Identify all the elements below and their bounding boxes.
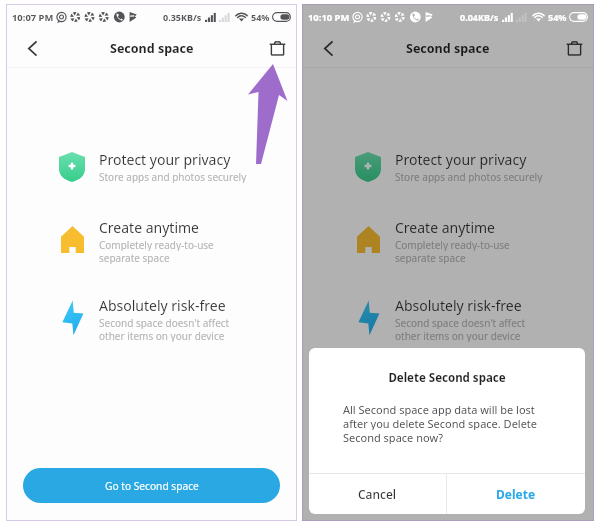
staticText: Delete Second space [309,370,585,386]
button[interactable]: Go to Second space [319,468,576,503]
staticText: 10:10 PM [308,11,350,24]
staticText: 10:07 PM [12,11,54,24]
button[interactable]: Delete [558,32,590,64]
staticText: 0.35KB/s [163,11,202,23]
staticText: All Second space app data will be lost [343,402,535,416]
staticText: Create anytime [395,218,495,237]
staticText: Second space doesn't affect [395,316,526,329]
staticText: separate space [395,251,466,264]
staticText: 54% [251,11,270,23]
staticText: Completely ready-to-use [395,238,510,251]
staticText: other items on your device [395,329,521,342]
staticText: Second space now? [343,430,444,444]
button[interactable]: Go to Second space [23,468,280,503]
staticText: 0.04KB/s [460,11,499,23]
staticText: Delete [496,486,536,502]
staticText: Store apps and photos securely [395,170,543,183]
staticText: Go to Second space [105,479,199,493]
button[interactable]: Back [312,32,344,64]
button[interactable]: Back [16,32,48,64]
staticText: separate space [99,251,170,264]
staticText: Completely ready-to-use [99,238,214,251]
staticText: Absolutely risk-free [99,296,226,315]
staticText: Second space [406,40,490,57]
staticText: after you delete Second space. Delete [343,416,538,430]
staticText: Protect your privacy [395,150,527,169]
staticText: Second space doesn't affect [99,316,230,329]
staticText: Cancel [358,486,397,502]
staticText: 54% [548,11,567,23]
staticText: Absolutely risk-free [395,296,522,315]
button[interactable]: Delete [447,474,585,514]
staticText: Protect your privacy [99,150,231,169]
button[interactable]: Cancel [309,474,446,514]
button[interactable]: Delete [261,32,293,64]
staticText: Second space [110,40,194,57]
staticText: Create anytime [99,218,199,237]
staticText: Store apps and photos securely [99,170,247,183]
staticText: other items on your device [99,329,225,342]
